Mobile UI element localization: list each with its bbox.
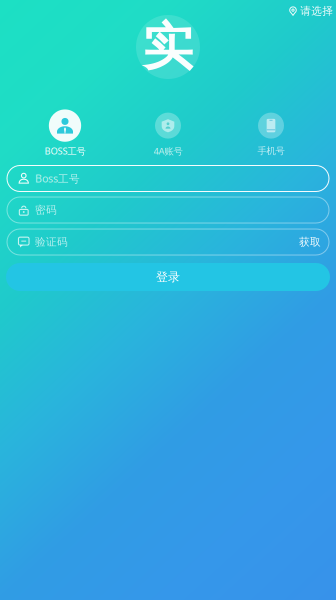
staticText: 请选择 [300,4,333,17]
staticText: 4A账号 [153,145,182,157]
button[interactable]: 登录 [6,263,330,291]
button[interactable]: 手机号 [227,109,315,157]
staticText: BOSS工号 [44,145,85,157]
staticText: 手机号 [257,145,284,157]
staticText: 实 [142,16,193,78]
staticText: 获取 [299,235,321,248]
button[interactable]: 请选择 [289,3,336,19]
staticText: Boss工号 [35,171,80,186]
button[interactable]: 4A账号 [124,109,212,157]
staticText: 验证码 [35,235,68,248]
staticText: 密码 [35,203,57,216]
staticText: 登录 [156,270,180,284]
button[interactable]: BOSS工号 [21,109,109,157]
